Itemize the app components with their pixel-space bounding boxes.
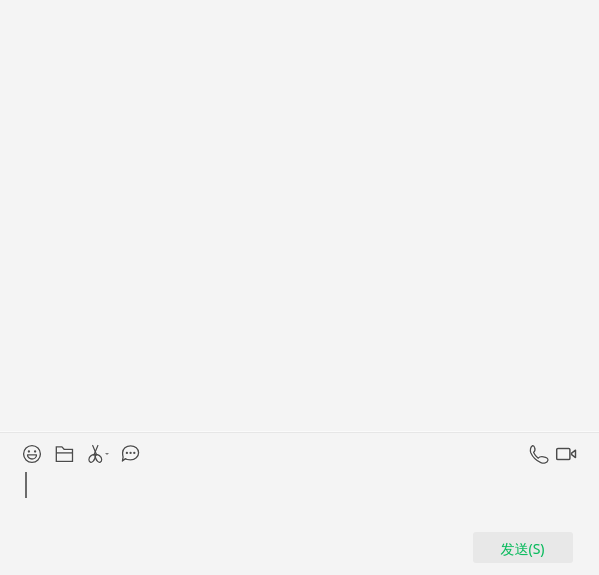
button[interactable]: 发送(S) [473, 532, 573, 563]
button[interactable]: Voice call [526, 441, 552, 467]
button[interactable]: Send file [51, 441, 77, 467]
button[interactable]: Chat history [117, 441, 143, 467]
staticText: 发送(S) [500, 539, 545, 558]
button[interactable]: Message input [0, 466, 599, 528]
button[interactable]: Screenshot [84, 441, 110, 467]
button[interactable]: Emoji [19, 441, 45, 467]
button[interactable]: Video call [553, 441, 579, 467]
